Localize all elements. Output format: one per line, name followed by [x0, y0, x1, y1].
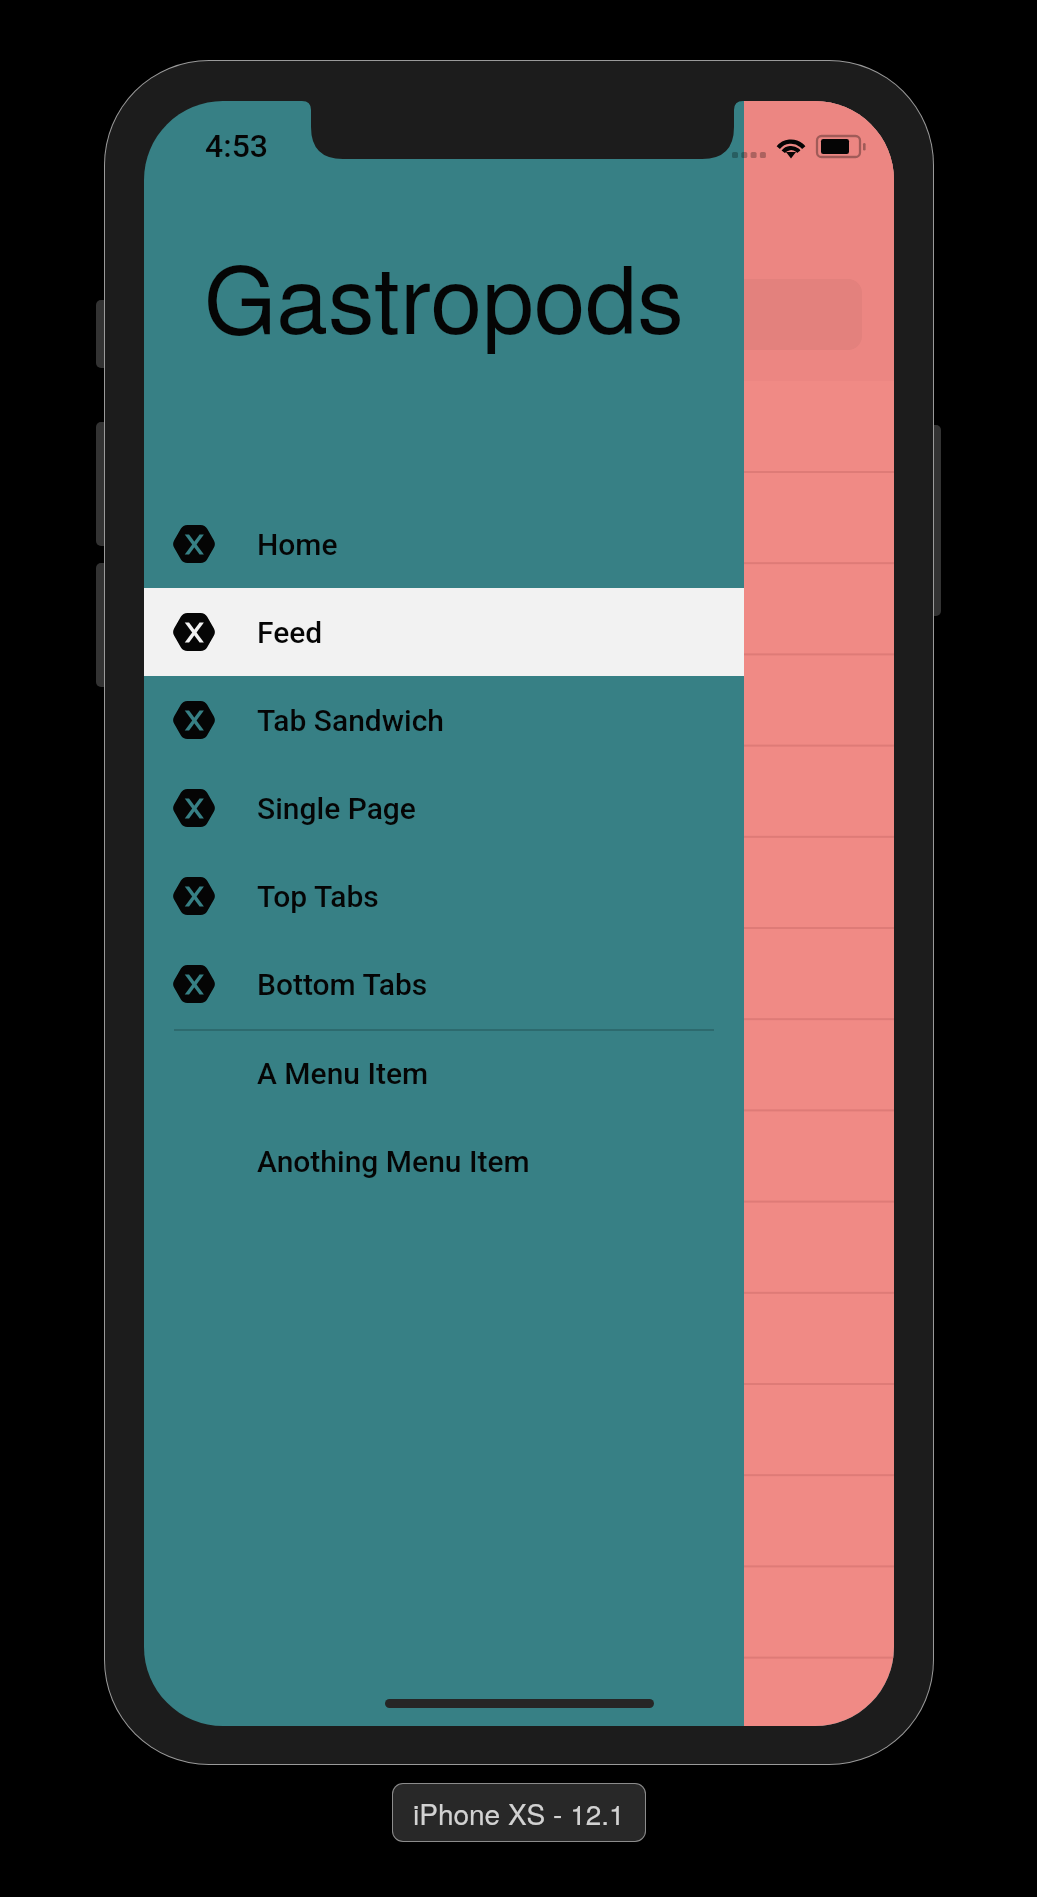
- button[interactable]: A Menu Item: [144, 1029, 744, 1117]
- button[interactable]: Home: [144, 500, 744, 588]
- button[interactable]: Tab Sandwich: [144, 676, 744, 764]
- staticText: Anothing Menu Item: [257, 1144, 530, 1179]
- staticText: A Menu Item: [257, 1056, 429, 1091]
- button[interactable]: Anothing Menu Item: [144, 1117, 744, 1205]
- staticText: Bottom Tabs: [257, 967, 428, 1002]
- staticText: 4:53: [205, 127, 268, 165]
- button[interactable]: Bottom Tabs: [144, 940, 744, 1028]
- staticText: Tab Sandwich: [257, 703, 444, 738]
- staticText: Home: [257, 527, 338, 562]
- staticText: Single Page: [257, 791, 416, 826]
- button[interactable]: Single Page: [144, 764, 744, 852]
- staticText: Top Tabs: [257, 879, 379, 914]
- staticText: Feed: [257, 615, 323, 650]
- staticText: iPhone XS - 12.1: [413, 1793, 625, 1833]
- button[interactable]: Feed: [144, 588, 744, 676]
- staticText: Gastropods: [204, 227, 684, 360]
- button[interactable]: Top Tabs: [144, 852, 744, 940]
